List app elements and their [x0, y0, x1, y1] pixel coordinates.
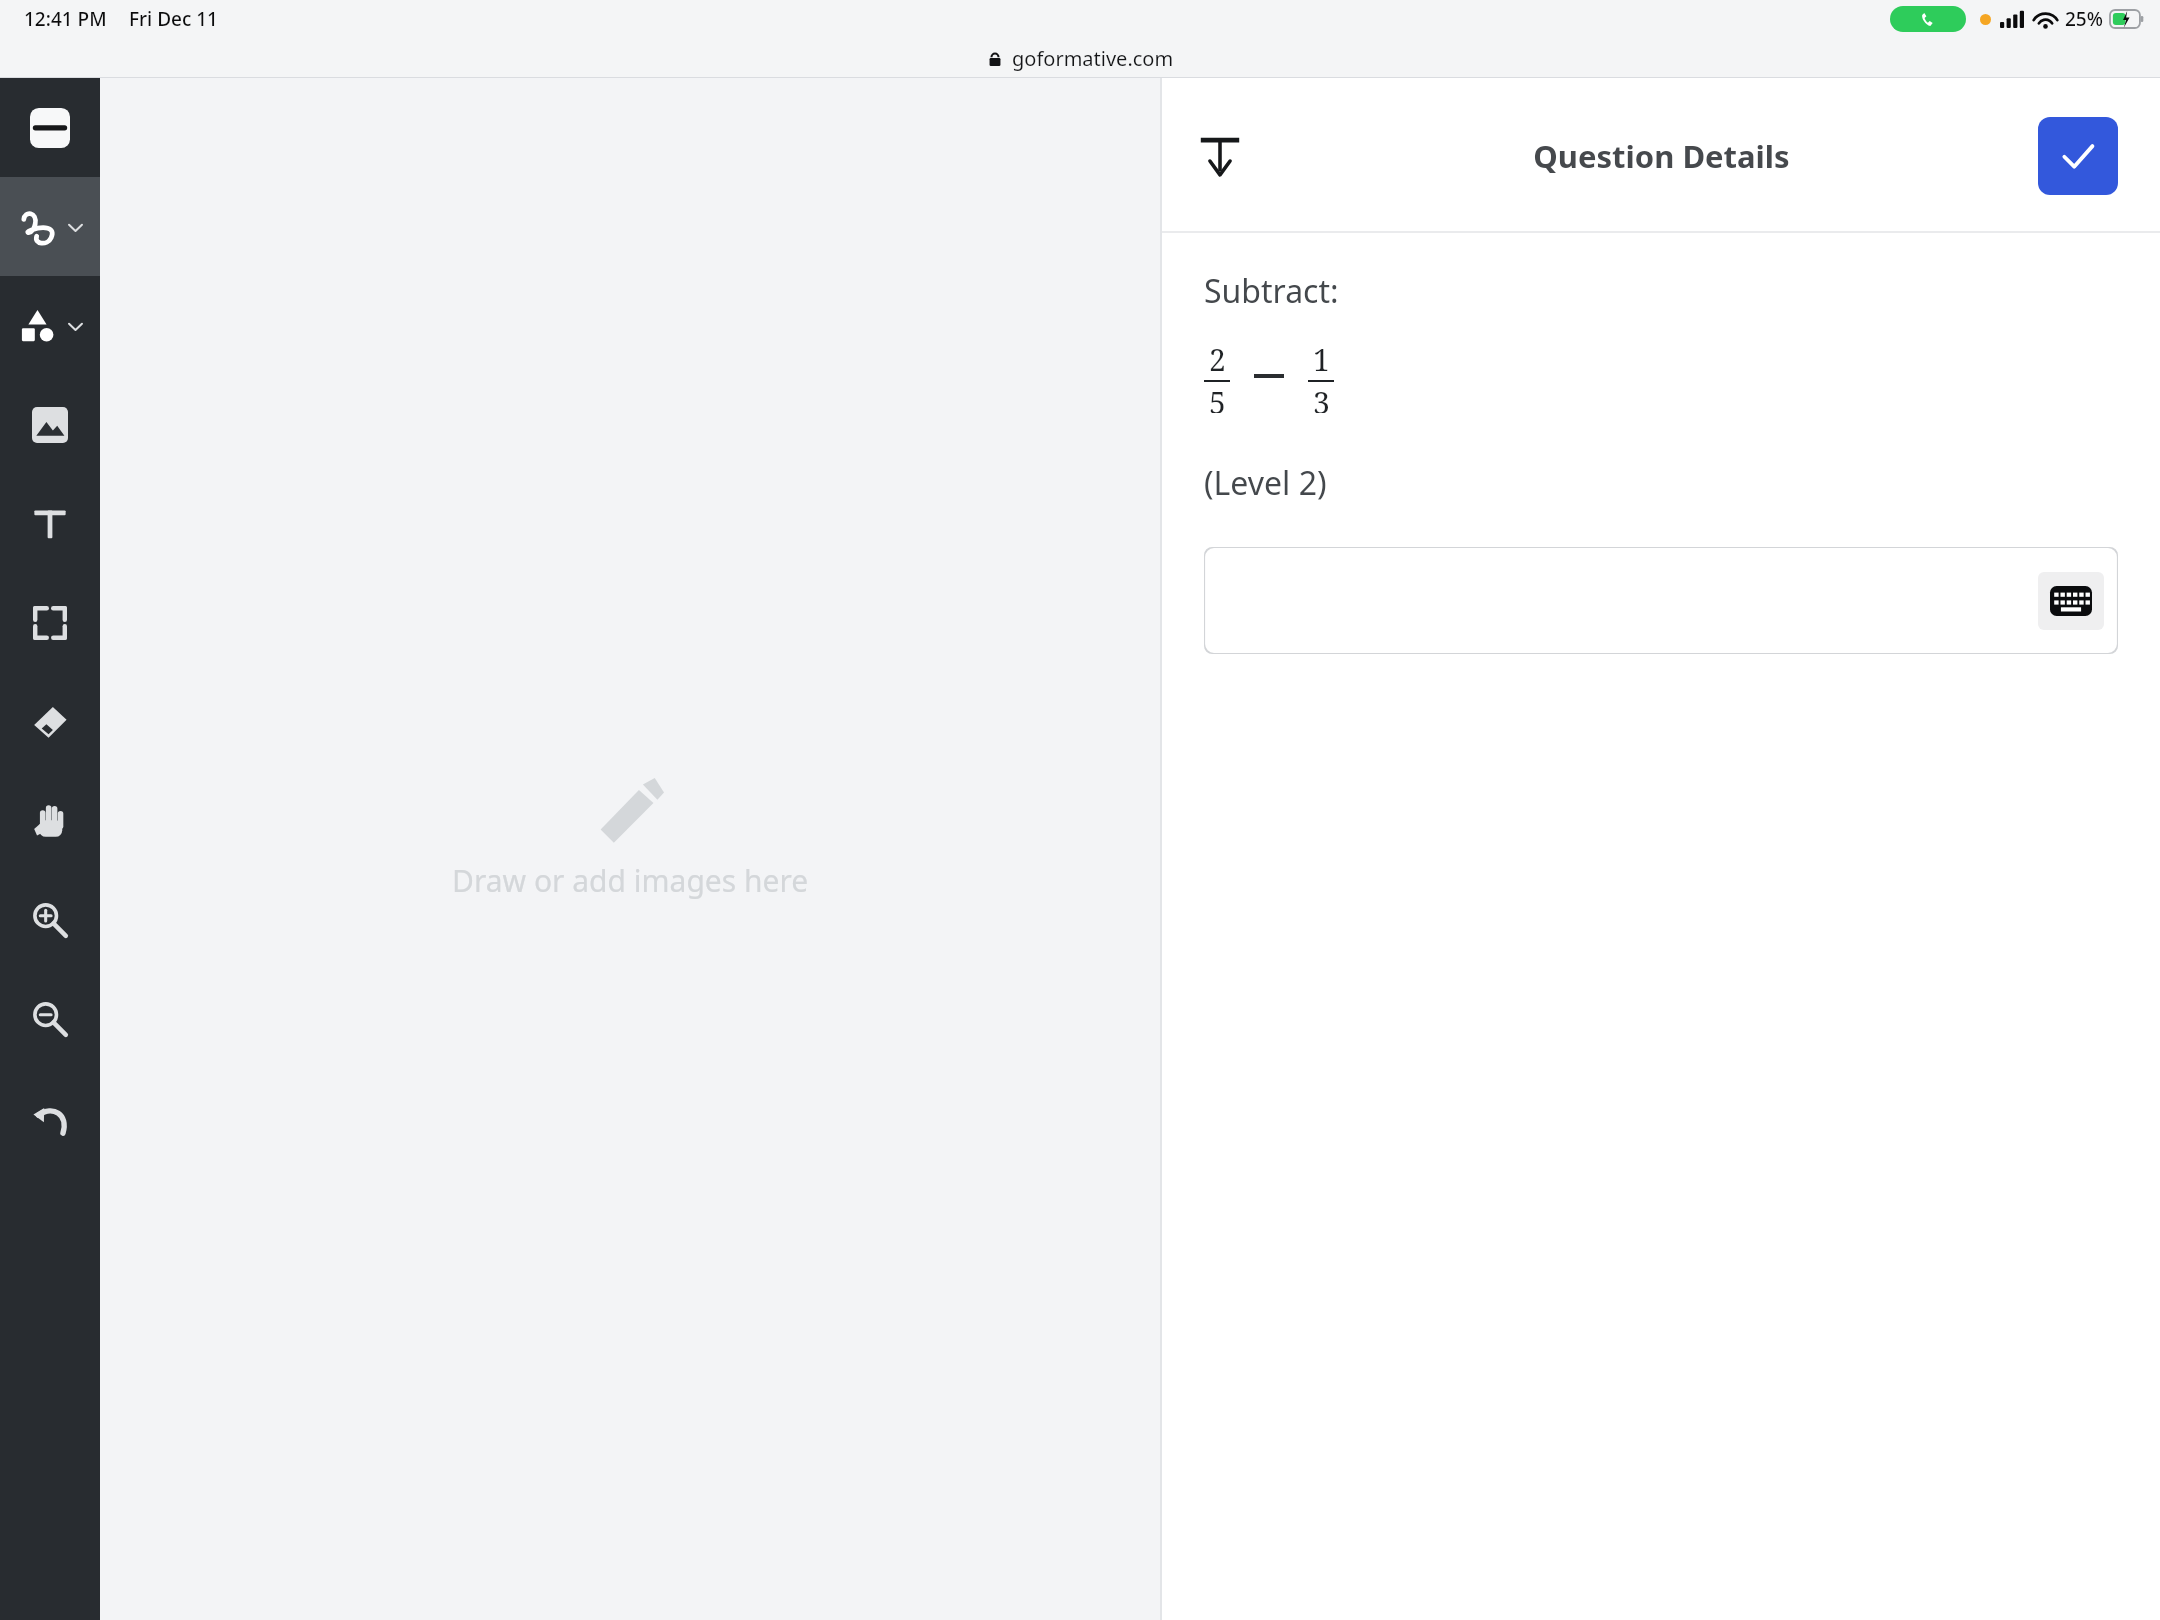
- button[interactable]: Eraser: [0, 672, 100, 771]
- button[interactable]: Pen tool: [0, 177, 100, 276]
- staticText: 3: [1313, 382, 1330, 413]
- staticText: goformative.com: [1012, 45, 1174, 72]
- button[interactable]: Collapse panel: [1184, 120, 1256, 192]
- staticText: 5: [1209, 382, 1226, 413]
- staticText: 25%: [2065, 6, 2103, 32]
- button[interactable]: goformative.com: [0, 38, 2160, 78]
- staticText: 12:41 PM: [24, 6, 107, 32]
- button[interactable]: Show keyboard: [2038, 572, 2104, 630]
- staticText: 1: [1313, 339, 1330, 380]
- button[interactable]: Active call: [1890, 6, 1966, 32]
- button[interactable]: Text: [0, 474, 100, 573]
- button[interactable]: Pan: [0, 771, 100, 870]
- button[interactable]: Image: [0, 375, 100, 474]
- staticText: Draw or add images here: [452, 860, 809, 901]
- staticText: (Level 2): [1204, 461, 1327, 505]
- button[interactable]: Shapes: [0, 276, 100, 375]
- button[interactable]: Show keyboard: [1204, 547, 2118, 654]
- button[interactable]: Select area: [0, 573, 100, 672]
- button[interactable]: Submit answer: [2038, 117, 2118, 195]
- button[interactable]: Zoom out: [0, 969, 100, 1068]
- staticText: Subtract:: [1204, 269, 1339, 313]
- button[interactable]: Line tool: [0, 78, 100, 177]
- staticText: Question Details: [1533, 135, 1790, 177]
- button[interactable]: Undo: [0, 1068, 100, 1167]
- staticText: 2: [1209, 339, 1226, 380]
- button[interactable]: Zoom in: [0, 870, 100, 969]
- staticText: Fri Dec 11: [129, 6, 218, 32]
